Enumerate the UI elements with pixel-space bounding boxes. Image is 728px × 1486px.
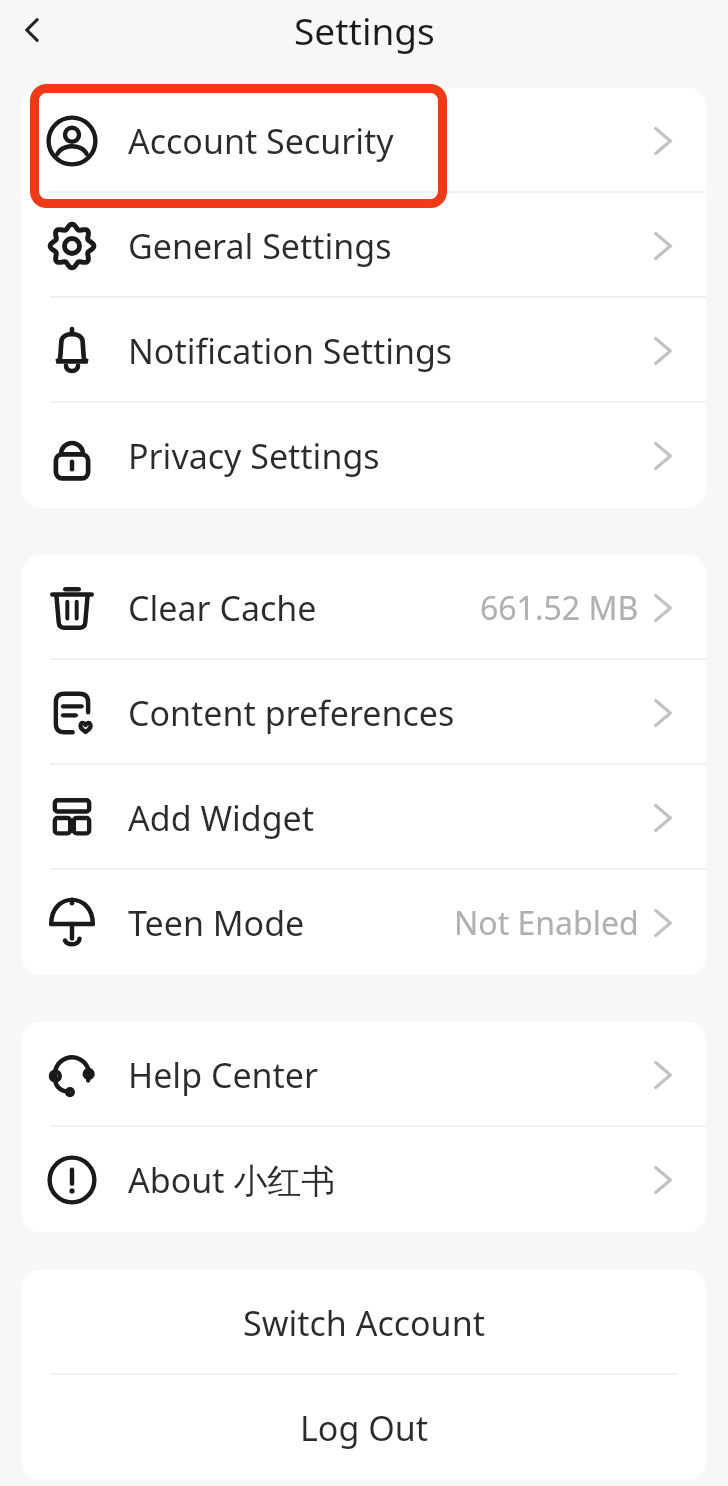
button[interactable]: Help Center — [22, 1022, 706, 1127]
button[interactable]: Back — [12, 10, 52, 50]
button[interactable]: Notification Settings — [22, 298, 706, 403]
staticText: Add Widget — [128, 795, 315, 841]
staticText: Settings — [294, 5, 435, 55]
staticText: Log Out — [300, 1405, 428, 1451]
staticText: Switch Account — [243, 1300, 485, 1346]
staticText: Not Enabled — [454, 901, 639, 945]
staticText: Clear Cache — [128, 585, 317, 631]
button[interactable]: Log Out — [22, 1375, 706, 1480]
staticText: 661.52 MB — [480, 586, 639, 630]
button[interactable]: Switch Account — [22, 1270, 706, 1375]
staticText: Content preferences — [128, 690, 455, 736]
staticText: Teen Mode — [128, 900, 305, 946]
button[interactable]: Clear Cache — [22, 555, 706, 660]
staticText: Privacy Settings — [128, 433, 380, 479]
staticText: Account Security — [128, 118, 394, 164]
staticText: General Settings — [128, 223, 392, 269]
staticText: Help Center — [128, 1052, 319, 1098]
staticText: Notification Settings — [128, 328, 453, 374]
button[interactable]: About 小红书 — [22, 1127, 706, 1232]
button[interactable]: Privacy Settings — [22, 403, 706, 508]
button[interactable]: Add Widget — [22, 765, 706, 870]
button[interactable]: Teen Mode — [22, 870, 706, 975]
button[interactable]: Content preferences — [22, 660, 706, 765]
button[interactable]: General Settings — [22, 193, 706, 298]
button[interactable]: Account Security — [22, 88, 706, 193]
staticText: About 小红书 — [128, 1157, 336, 1203]
